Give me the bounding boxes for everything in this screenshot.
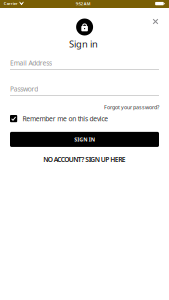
- staticText: NO ACCOUNT? SIGN UP HERE: [43, 155, 126, 164]
- button[interactable]: Close: [147, 13, 163, 29]
- button[interactable]: NO ACCOUNT? SIGN UP HERE: [10, 154, 159, 164]
- staticText: Password: [10, 84, 38, 93]
- staticText: Remember me on this device: [22, 114, 108, 123]
- button[interactable]: SIGN: [10, 132, 159, 147]
- staticText: SIGN: [74, 136, 87, 143]
- button[interactable]: Forgot your password?: [104, 102, 159, 113]
- staticText: Carrier: [4, 1, 18, 6]
- staticText: IN: [89, 136, 95, 143]
- staticText: Forgot your password?: [104, 104, 159, 111]
- staticText: 9:52 AM: [76, 1, 91, 6]
- button[interactable]: Remember me on this device: [10, 114, 108, 124]
- staticText: Sign in: [69, 38, 98, 50]
- staticText: Email Address: [10, 58, 52, 67]
